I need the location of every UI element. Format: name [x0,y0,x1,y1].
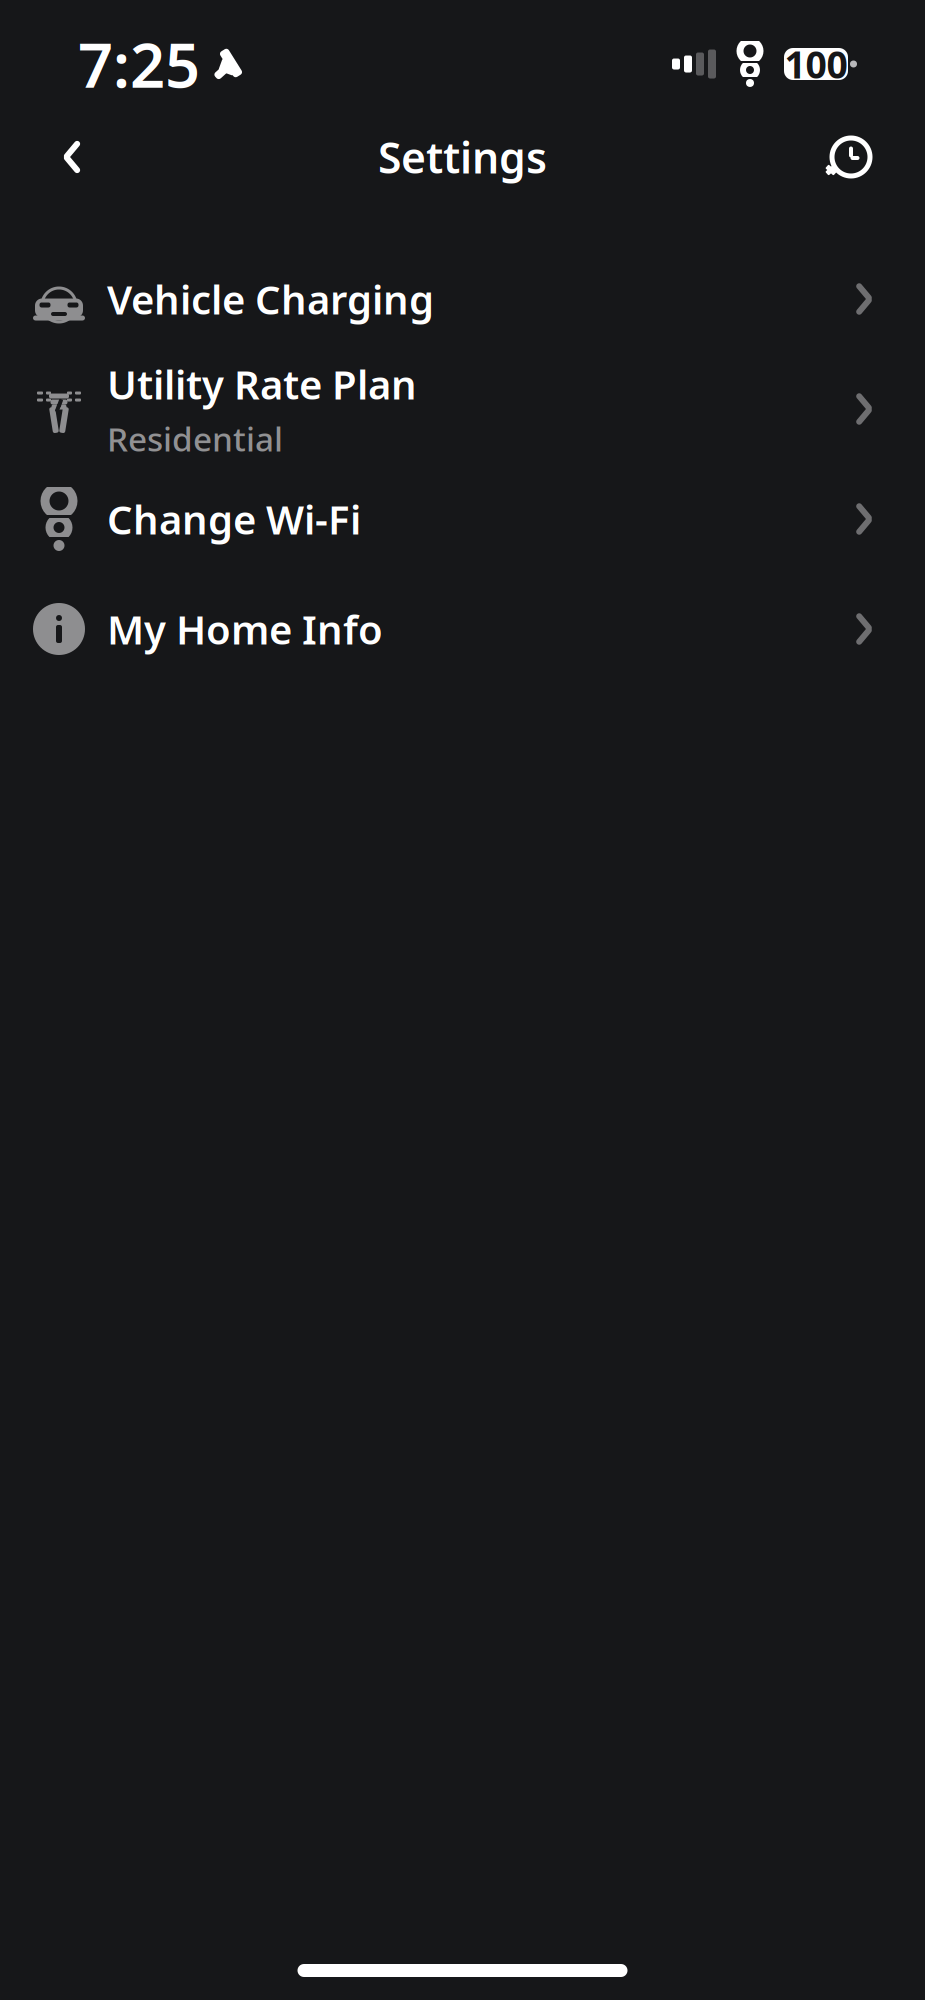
staticText: Residential [107,416,283,461]
staticText: Utility Rate Plan [107,357,417,410]
button[interactable]: Vehicle Charging [0,244,925,354]
staticText: My Home Info [107,602,383,655]
staticText: 100 [784,39,847,89]
button[interactable]: My Home Info [0,574,925,684]
button[interactable]: History [815,121,887,193]
staticText: Vehicle Charging [107,272,434,325]
button[interactable]: Change Wi-Fi [0,464,925,574]
button[interactable]: Back [36,121,108,193]
button[interactable]: Utility Rate Plan [0,354,925,464]
staticText: Change Wi-Fi [107,492,361,545]
staticText: Settings [378,129,547,185]
staticText: 7:25 [78,23,200,105]
